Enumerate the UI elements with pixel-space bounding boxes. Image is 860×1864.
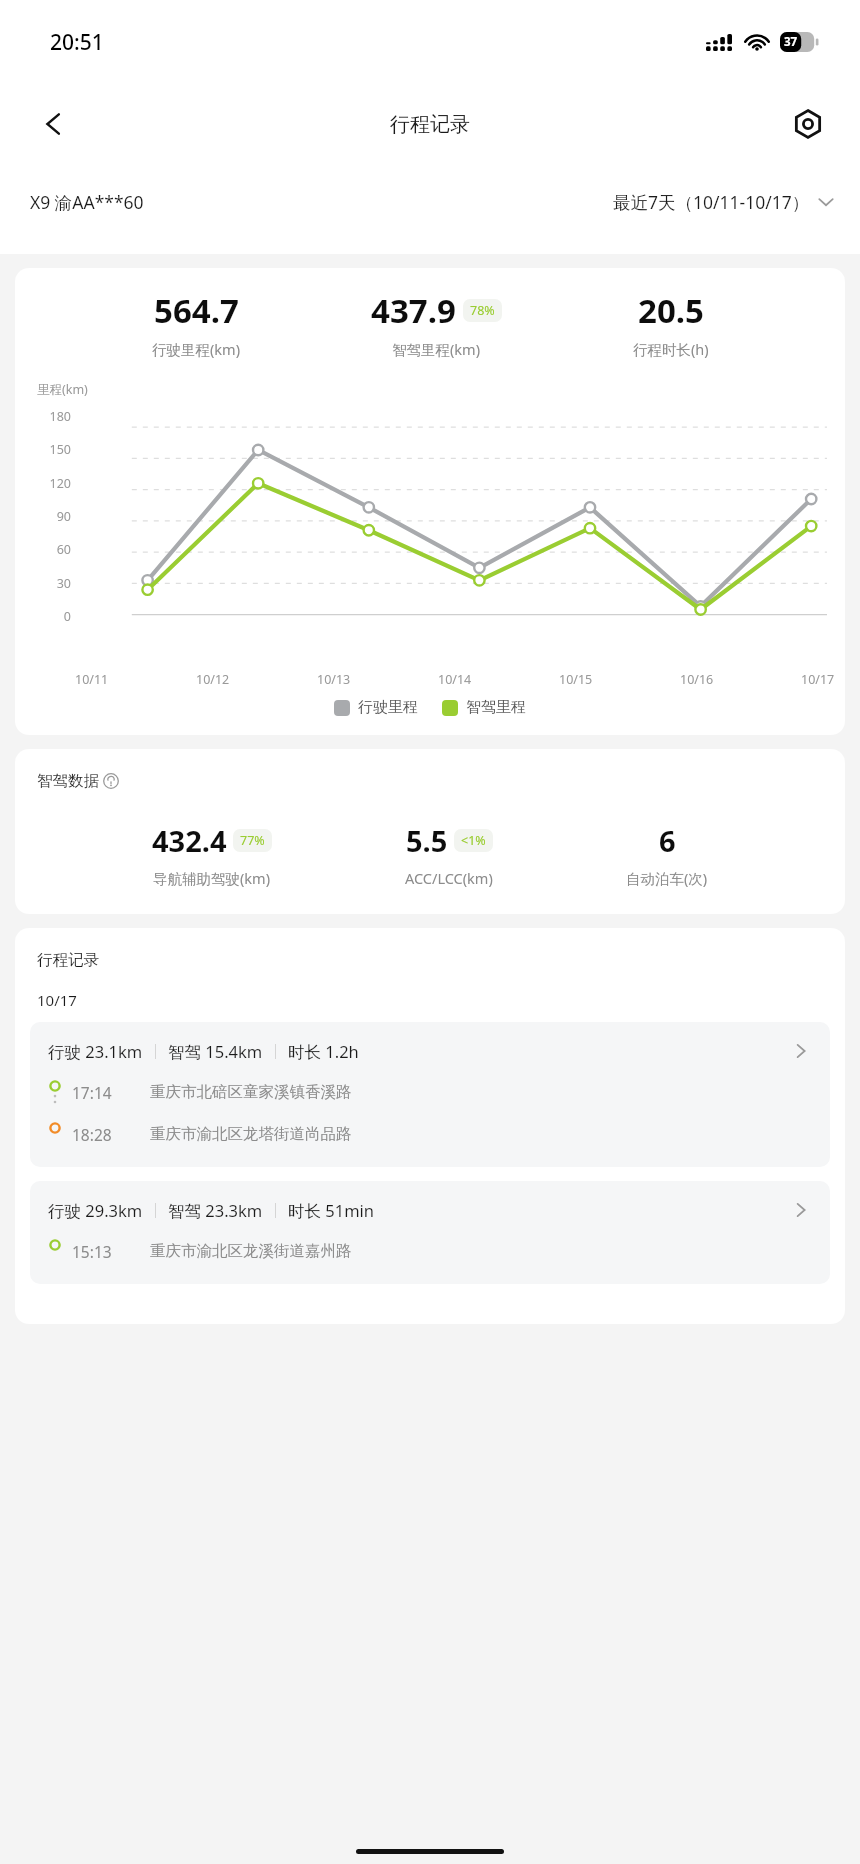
staticText: 最近7天（10/11-10/17） bbox=[613, 190, 810, 214]
staticText: 10/17 bbox=[801, 671, 835, 688]
staticText: 时长 1.2h bbox=[288, 1040, 359, 1063]
staticText: 10/16 bbox=[680, 671, 714, 688]
staticText: 37 bbox=[784, 34, 798, 50]
staticText: 6 bbox=[659, 821, 676, 860]
staticText: 10/11 bbox=[75, 671, 109, 688]
button[interactable]: 最近7天（10/11-10/17） bbox=[613, 190, 834, 214]
staticText: 18:28 bbox=[72, 1124, 136, 1145]
button[interactable]: 行驶 23.1km bbox=[30, 1022, 830, 1167]
staticText: 智驾 15.4km bbox=[168, 1040, 263, 1063]
button[interactable]: 返回 bbox=[28, 98, 80, 150]
button[interactable]: 行驶 29.3km bbox=[30, 1181, 830, 1284]
staticText: 30 bbox=[37, 575, 71, 592]
staticText: 20:51 bbox=[50, 28, 104, 57]
staticText: 行驶 23.1km bbox=[48, 1040, 143, 1063]
staticText: <1% bbox=[461, 832, 486, 849]
button[interactable]: 设置 bbox=[782, 98, 834, 150]
staticText: 智驾里程 bbox=[466, 698, 526, 717]
staticText: 10/13 bbox=[317, 671, 351, 688]
staticText: 里程(km) bbox=[37, 381, 88, 398]
staticText: 10/12 bbox=[196, 671, 230, 688]
staticText: 5.5 bbox=[406, 821, 448, 860]
staticText: 437.9 bbox=[371, 288, 456, 333]
staticText: 77% bbox=[240, 832, 265, 849]
staticText: 行驶里程 bbox=[358, 698, 418, 717]
staticText: 10/14 bbox=[438, 671, 472, 688]
staticText: 90 bbox=[37, 508, 71, 525]
staticText: 重庆市渝北区龙塔街道尚品路 bbox=[150, 1124, 352, 1144]
staticText: 150 bbox=[37, 441, 71, 458]
staticText: 17:14 bbox=[72, 1082, 136, 1103]
staticText: 智驾里程(km) bbox=[392, 339, 481, 359]
staticText: 行驶里程(km) bbox=[152, 339, 241, 359]
staticText: 120 bbox=[37, 475, 71, 492]
staticText: 行程时长(h) bbox=[633, 339, 709, 359]
staticText: 智驾数据 bbox=[37, 771, 99, 791]
staticText: 20.5 bbox=[638, 288, 704, 333]
staticText: ACC/LCC(km) bbox=[405, 868, 493, 888]
staticText: 60 bbox=[37, 541, 71, 558]
staticText: 180 bbox=[37, 408, 71, 425]
staticText: 行程记录 bbox=[390, 112, 470, 137]
staticText: 432.4 bbox=[152, 821, 227, 860]
staticText: 564.7 bbox=[154, 288, 239, 333]
staticText: 10/15 bbox=[559, 671, 593, 688]
staticText: 导航辅助驾驶(km) bbox=[153, 868, 271, 888]
staticText: 0 bbox=[37, 608, 71, 625]
staticText: 行程记录 bbox=[37, 950, 99, 970]
staticText: 重庆市北碚区童家溪镇香溪路 bbox=[150, 1082, 352, 1102]
staticText: 78% bbox=[470, 302, 495, 319]
other: 查看详情 bbox=[790, 1199, 812, 1221]
staticText: 智驾 23.3km bbox=[168, 1199, 263, 1222]
staticText: 15:13 bbox=[72, 1241, 136, 1262]
staticText: 10/17 bbox=[37, 990, 77, 1010]
staticText: 重庆市渝北区龙溪街道嘉州路 bbox=[150, 1241, 352, 1261]
staticText: 行驶 29.3km bbox=[48, 1199, 143, 1222]
other: 查看详情 bbox=[790, 1040, 812, 1062]
staticText: 时长 51min bbox=[288, 1199, 375, 1222]
staticText: 自动泊车(次) bbox=[626, 868, 708, 888]
button[interactable]: X9 渝AA***60 bbox=[30, 190, 144, 214]
